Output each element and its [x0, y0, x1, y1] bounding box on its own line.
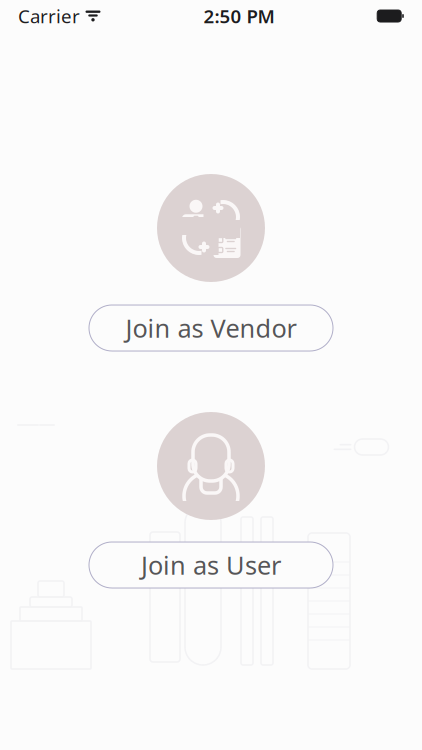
button[interactable]: Join as User	[89, 542, 333, 588]
staticText: Join as Vendor	[125, 311, 296, 345]
button[interactable]: Join as Vendor	[89, 305, 333, 351]
staticText: 2:50 PM	[203, 4, 274, 28]
staticText: Join as User	[141, 548, 281, 582]
staticText: Carrier	[18, 4, 80, 28]
